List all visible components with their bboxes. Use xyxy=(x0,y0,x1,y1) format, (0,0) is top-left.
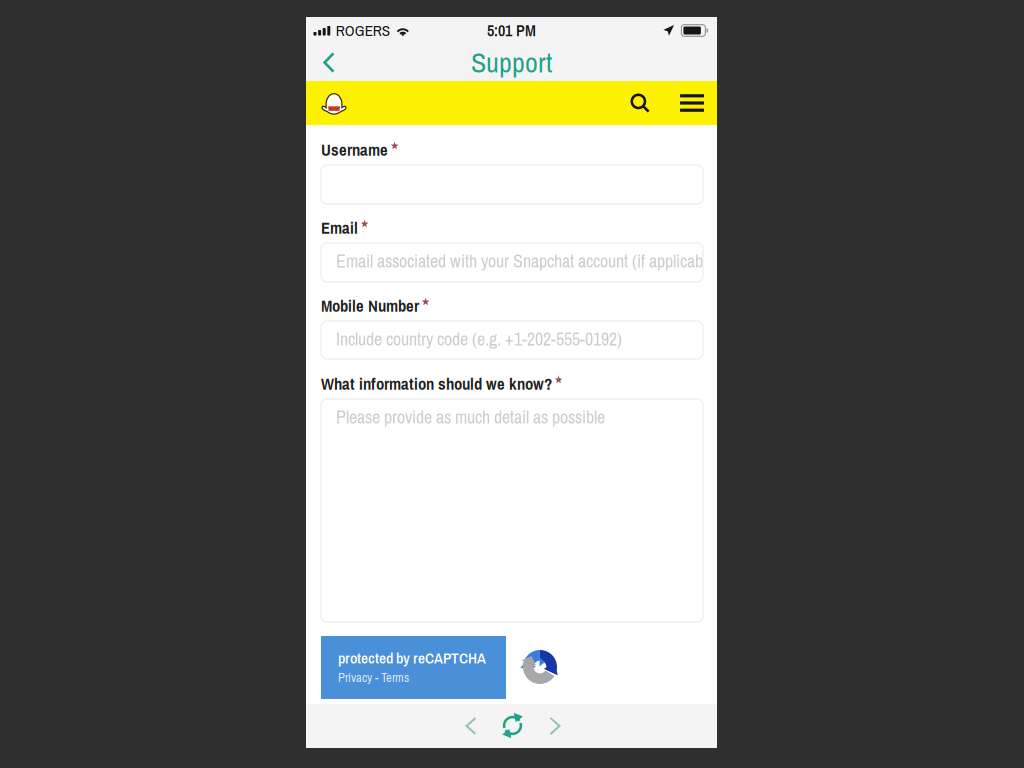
button[interactable]: Back xyxy=(451,704,491,748)
staticText: Mobile Number xyxy=(321,294,419,317)
button[interactable]: Snapchat home xyxy=(306,81,362,125)
staticText: Support xyxy=(471,44,552,81)
button[interactable]: reCAPTCHA privacy and terms xyxy=(321,636,575,699)
button[interactable]: Search xyxy=(616,81,664,125)
staticText: protected by reCAPTCHA xyxy=(338,648,486,668)
button[interactable]: Forward xyxy=(534,704,576,748)
staticText: Include country code (e.g. +1-202-555-01… xyxy=(336,327,622,351)
staticText: 5:01 PM xyxy=(487,20,536,41)
staticText: Username xyxy=(321,138,388,161)
staticText: ROGERS xyxy=(336,20,390,41)
staticText: What information should we know? xyxy=(321,372,552,395)
staticText: Email associated with your Snapchat acco… xyxy=(336,249,719,273)
button[interactable]: Reload xyxy=(491,704,534,748)
staticText: Privacy - Terms xyxy=(338,669,409,686)
button[interactable]: Menu xyxy=(671,81,713,125)
staticText: Email xyxy=(321,216,358,239)
staticText: Please provide as much detail as possibl… xyxy=(336,405,605,429)
button[interactable]: Back xyxy=(306,44,352,81)
